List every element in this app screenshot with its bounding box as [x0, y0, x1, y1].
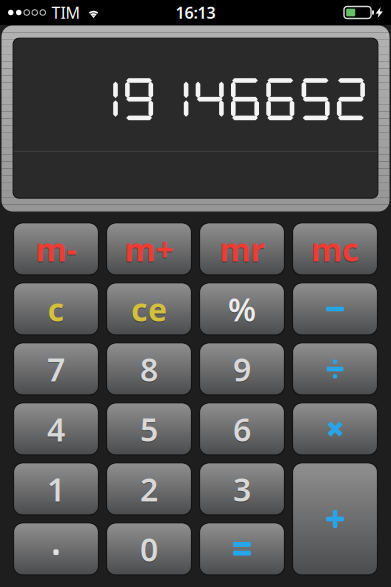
button[interactable]: 2: [106, 463, 191, 515]
staticText: 6: [233, 408, 251, 450]
button[interactable]: 8: [106, 343, 191, 395]
staticText: 0: [140, 528, 158, 570]
staticText: 9: [233, 348, 251, 390]
button[interactable]: 5: [106, 403, 191, 455]
staticText: 3: [233, 468, 251, 510]
staticText: TIM: [51, 2, 80, 23]
staticText: %: [228, 288, 256, 330]
button[interactable]: 0: [106, 523, 191, 575]
staticText: 3: [233, 469, 251, 511]
staticText: m+: [124, 229, 173, 271]
staticText: c: [47, 288, 64, 330]
button[interactable]: Multiply: [292, 403, 377, 455]
staticText: ce: [131, 288, 167, 330]
staticText: 8: [140, 349, 158, 391]
staticText: ce: [131, 289, 167, 331]
staticText: mr: [219, 229, 264, 271]
staticText: 5: [140, 409, 158, 451]
staticText: c: [47, 289, 64, 331]
staticText: 1: [47, 468, 65, 510]
staticText: 5: [140, 408, 158, 450]
button[interactable]: 6: [199, 403, 284, 455]
staticText: 8: [140, 348, 158, 390]
button[interactable]: Divide: [292, 343, 377, 395]
button[interactable]: m-: [13, 223, 98, 275]
button[interactable]: mc: [292, 223, 377, 275]
staticText: mr: [219, 228, 264, 270]
button[interactable]: 1: [13, 463, 98, 515]
staticText: m-: [35, 228, 76, 270]
button[interactable]: m+: [106, 223, 191, 275]
staticText: 2: [140, 468, 158, 510]
button[interactable]: 3: [199, 463, 284, 515]
staticText: 4: [47, 409, 65, 451]
button[interactable]: Equals: [199, 523, 284, 575]
staticText: 1: [47, 469, 65, 511]
button[interactable]: 4: [13, 403, 98, 455]
button[interactable]: 7: [13, 343, 98, 395]
staticText: 7: [47, 348, 65, 390]
staticText: mc: [311, 229, 359, 271]
staticText: 6: [233, 409, 251, 451]
staticText: 4: [47, 408, 65, 450]
staticText: m-: [35, 229, 76, 271]
button[interactable]: Minus: [292, 283, 377, 335]
staticText: 16:13: [175, 2, 215, 23]
button[interactable]: Decimal point: [13, 523, 98, 575]
staticText: 7: [47, 349, 65, 391]
staticText: 2: [140, 469, 158, 511]
staticText: m+: [124, 228, 173, 270]
staticText: 9: [233, 349, 251, 391]
button[interactable]: Plus: [292, 463, 377, 575]
button[interactable]: 9: [199, 343, 284, 395]
button[interactable]: mr: [199, 223, 284, 275]
button[interactable]: ce: [106, 283, 191, 335]
button[interactable]: c: [13, 283, 98, 335]
staticText: 0: [140, 529, 158, 571]
staticText: %: [228, 289, 256, 331]
button[interactable]: %: [199, 283, 284, 335]
staticText: mc: [311, 228, 359, 270]
